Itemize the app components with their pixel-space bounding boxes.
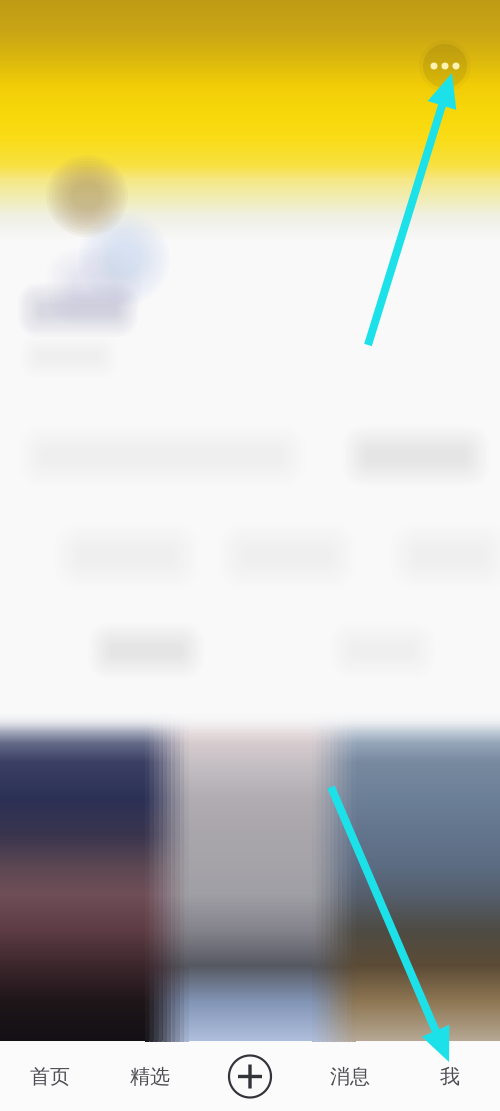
button[interactable]: Post 2 (167, 713, 333, 1041)
button[interactable]: 首页 (0, 1042, 100, 1111)
button[interactable]: 精选 (100, 1042, 200, 1111)
button[interactable]: Post 1 (0, 713, 167, 1041)
staticText: 我 (440, 1064, 460, 1089)
staticText: 消息 (330, 1064, 370, 1089)
button[interactable]: 我 (400, 1042, 500, 1111)
staticText: 首页 (30, 1064, 70, 1089)
staticText: 精选 (130, 1064, 170, 1089)
button[interactable]: Post 3 (333, 713, 500, 1041)
button[interactable]: Create (200, 1042, 300, 1111)
button[interactable]: More options (418, 39, 472, 93)
button[interactable]: 消息 (300, 1042, 400, 1111)
